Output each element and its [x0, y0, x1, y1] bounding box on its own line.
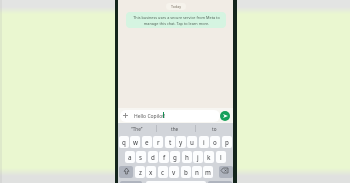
button[interactable]: m: [203, 166, 213, 178]
staticText: w: [133, 138, 138, 146]
button[interactable]: o: [210, 136, 220, 148]
button[interactable]: w: [130, 136, 140, 148]
staticText: f: [163, 153, 166, 161]
button[interactable]: s: [136, 151, 146, 163]
button[interactable]: d: [148, 151, 158, 163]
button[interactable]: b: [181, 166, 191, 178]
button[interactable]: g: [170, 151, 180, 163]
staticText: i: [203, 138, 205, 146]
button[interactable]: r: [153, 136, 163, 148]
staticText: to: [212, 126, 217, 132]
staticText: a: [128, 153, 132, 161]
button[interactable]: [220, 111, 230, 121]
staticText: s: [139, 153, 143, 161]
button[interactable]: [146, 181, 206, 183]
button[interactable]: k: [204, 151, 214, 163]
button[interactable]: z: [135, 166, 145, 178]
button[interactable]: p: [222, 136, 232, 148]
staticText: h: [185, 153, 189, 161]
button[interactable]: to: [195, 123, 233, 135]
staticText: Hello Copilot!: [134, 113, 166, 120]
staticText: m: [205, 168, 211, 176]
button[interactable]: u: [187, 136, 197, 148]
staticText: r: [157, 138, 160, 146]
staticText: the: [171, 126, 179, 132]
button[interactable]: h: [182, 151, 192, 163]
button[interactable]: i: [199, 136, 209, 148]
staticText: This business uses a secure service from…: [133, 15, 220, 26]
staticText: n: [195, 168, 199, 176]
button[interactable]: t: [165, 136, 175, 148]
staticText: x: [149, 168, 153, 176]
button[interactable]: [219, 166, 233, 178]
button[interactable]: a: [125, 151, 135, 163]
button[interactable]: “The”: [118, 123, 156, 135]
button[interactable]: j: [193, 151, 203, 163]
staticText: d: [151, 153, 155, 161]
staticText: l: [220, 153, 222, 161]
staticText: c: [161, 168, 165, 176]
staticText: y: [179, 138, 183, 146]
staticText: u: [190, 138, 194, 146]
staticText: g: [173, 153, 177, 161]
staticText: o: [213, 138, 217, 146]
button[interactable]: the: [156, 123, 194, 135]
staticText: e: [145, 138, 149, 146]
staticText: t: [169, 138, 172, 146]
staticText: j: [197, 153, 199, 161]
button[interactable]: v: [169, 166, 179, 178]
button[interactable]: n: [192, 166, 202, 178]
button[interactable]: f: [159, 151, 169, 163]
button[interactable]: x: [146, 166, 156, 178]
button[interactable]: [208, 181, 232, 183]
staticText: Today: [171, 4, 181, 9]
button[interactable]: l: [216, 151, 226, 163]
button[interactable]: y: [176, 136, 186, 148]
staticText: “The”: [131, 126, 143, 132]
staticText: k: [207, 153, 211, 161]
button[interactable]: [120, 110, 220, 122]
button[interactable]: c: [158, 166, 168, 178]
button[interactable]: e: [142, 136, 152, 148]
button[interactable]: [119, 166, 133, 178]
staticText: p: [225, 138, 229, 146]
staticText: z: [139, 168, 142, 176]
button[interactable]: [120, 181, 142, 183]
button[interactable]: q: [119, 136, 129, 148]
staticText: v: [172, 168, 176, 176]
staticText: q: [122, 138, 126, 146]
button[interactable]: This business uses a secure service from…: [126, 12, 226, 28]
staticText: b: [184, 168, 188, 176]
